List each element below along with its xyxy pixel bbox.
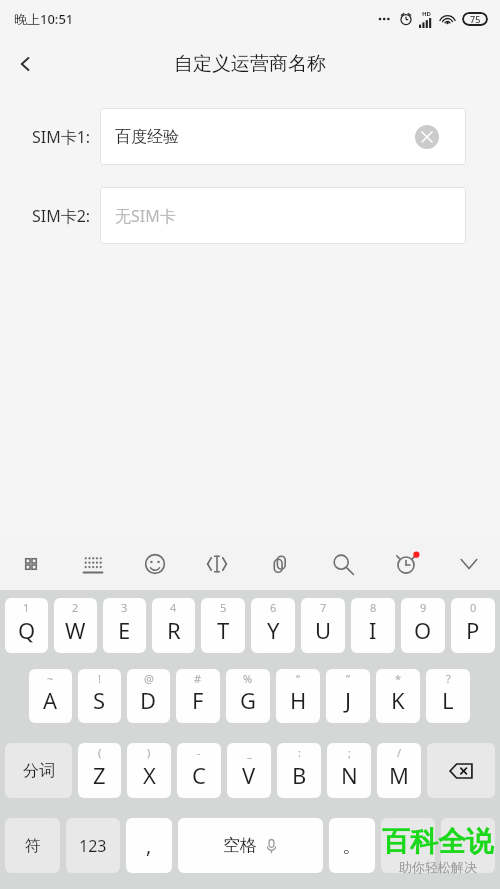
staticText: 7 [320, 600, 327, 615]
button[interactable]: 9 [401, 598, 445, 653]
staticText: V [242, 760, 256, 790]
button[interactable]: Text edit [186, 537, 248, 590]
button[interactable]: - [177, 743, 221, 798]
staticText: 百科全说 [382, 824, 494, 859]
staticText: Q [18, 615, 36, 645]
staticText: D [140, 685, 157, 715]
button[interactable]: Backspace [427, 743, 495, 798]
button[interactable]: , [126, 818, 172, 873]
staticText: C [192, 760, 206, 790]
button[interactable]: 0 [451, 598, 495, 653]
staticText: 助你轻松解决 [399, 859, 477, 875]
button[interactable]: 3 [103, 598, 146, 653]
button[interactable]: _ [227, 743, 271, 798]
button[interactable]: 4 [152, 598, 195, 653]
staticText: 0 [470, 600, 477, 615]
staticText: 6 [270, 600, 277, 615]
staticText: 9 [420, 600, 427, 615]
button[interactable]: 2 [54, 598, 97, 653]
button[interactable]: ! [78, 669, 121, 723]
staticText: 5 [220, 600, 227, 615]
button[interactable]: # [176, 669, 220, 723]
staticText: 75 [470, 13, 481, 25]
button[interactable]: 5 [201, 598, 245, 653]
button[interactable]: 8 [351, 598, 395, 653]
staticText: 3 [121, 600, 128, 615]
button[interactable]: @ [127, 669, 170, 723]
button[interactable]: % [226, 669, 270, 723]
staticText: ! [98, 671, 101, 686]
button[interactable]: ? [426, 669, 470, 723]
staticText: U [315, 615, 332, 645]
staticText: SIM卡2: [32, 205, 91, 227]
staticText: 1 [23, 600, 30, 615]
staticText: ” [346, 671, 350, 686]
staticText: ) [147, 745, 151, 760]
button[interactable]: * [376, 669, 420, 723]
button[interactable]: Timer [374, 537, 437, 590]
staticText: * [395, 671, 402, 686]
button[interactable]: Clipboard [248, 537, 311, 590]
staticText: @ [144, 671, 154, 686]
button[interactable]: ” [326, 669, 370, 723]
staticText: H [290, 685, 307, 715]
staticText: X [143, 760, 156, 790]
button[interactable]: 无SIM卡 [100, 187, 466, 244]
button[interactable]: 7 [301, 598, 345, 653]
button[interactable]: 百度经验 [100, 108, 466, 165]
staticText: 123 [79, 835, 107, 857]
button[interactable]: Keyboard layout [62, 537, 124, 590]
staticText: 2 [72, 600, 79, 615]
staticText: E [118, 615, 131, 645]
button[interactable]: 123 [66, 818, 120, 873]
staticText: K [391, 685, 405, 715]
staticText: SIM卡1: [32, 126, 91, 148]
button[interactable]: 6 [251, 598, 295, 653]
staticText: : [298, 745, 301, 760]
button[interactable]: / [377, 743, 421, 798]
staticText: 4 [170, 600, 177, 615]
staticText: P [466, 615, 480, 645]
staticText: F [192, 685, 204, 715]
staticText: O [414, 615, 432, 645]
staticText: T [217, 615, 230, 645]
staticText: 自定义运营商名称 [174, 52, 326, 76]
button[interactable]: ) [127, 743, 171, 798]
staticText: B [292, 760, 307, 790]
staticText: 8 [370, 600, 377, 615]
button[interactable]: 分词 [5, 743, 72, 798]
staticText: W [65, 615, 86, 645]
staticText: ( [98, 745, 102, 760]
staticText: 。 [342, 833, 362, 858]
staticText: / [397, 745, 402, 760]
button[interactable]: 1 [5, 598, 48, 653]
button[interactable]: Search [311, 537, 374, 590]
button[interactable]: ~ [29, 669, 72, 723]
staticText: M [389, 760, 409, 790]
staticText: S [93, 685, 106, 715]
button[interactable]: Apps [0, 537, 62, 590]
staticText: Y [267, 615, 280, 645]
button[interactable]: 符 [5, 818, 60, 873]
button[interactable]: : [277, 743, 321, 798]
staticText: “ [296, 671, 300, 686]
button[interactable]: Back [0, 38, 52, 90]
staticText: 分词 [23, 761, 55, 781]
staticText: R [167, 615, 181, 645]
staticText: ? [446, 671, 451, 686]
button[interactable]: “ [276, 669, 320, 723]
button[interactable]: Emoji [124, 537, 186, 590]
button[interactable]: Hide keyboard [437, 537, 500, 590]
staticText: J [345, 685, 352, 715]
staticText: I [369, 615, 377, 645]
button[interactable] [381, 818, 435, 873]
button[interactable]: ( [78, 743, 121, 798]
button[interactable]: 。 [329, 818, 375, 873]
button[interactable] [441, 818, 495, 873]
staticText: A [43, 685, 58, 715]
button[interactable]: Clear [415, 125, 439, 149]
staticText: HD [422, 10, 431, 18]
button[interactable]: ; [327, 743, 371, 798]
staticText: - [197, 745, 201, 760]
button[interactable]: 空格 [178, 818, 323, 873]
